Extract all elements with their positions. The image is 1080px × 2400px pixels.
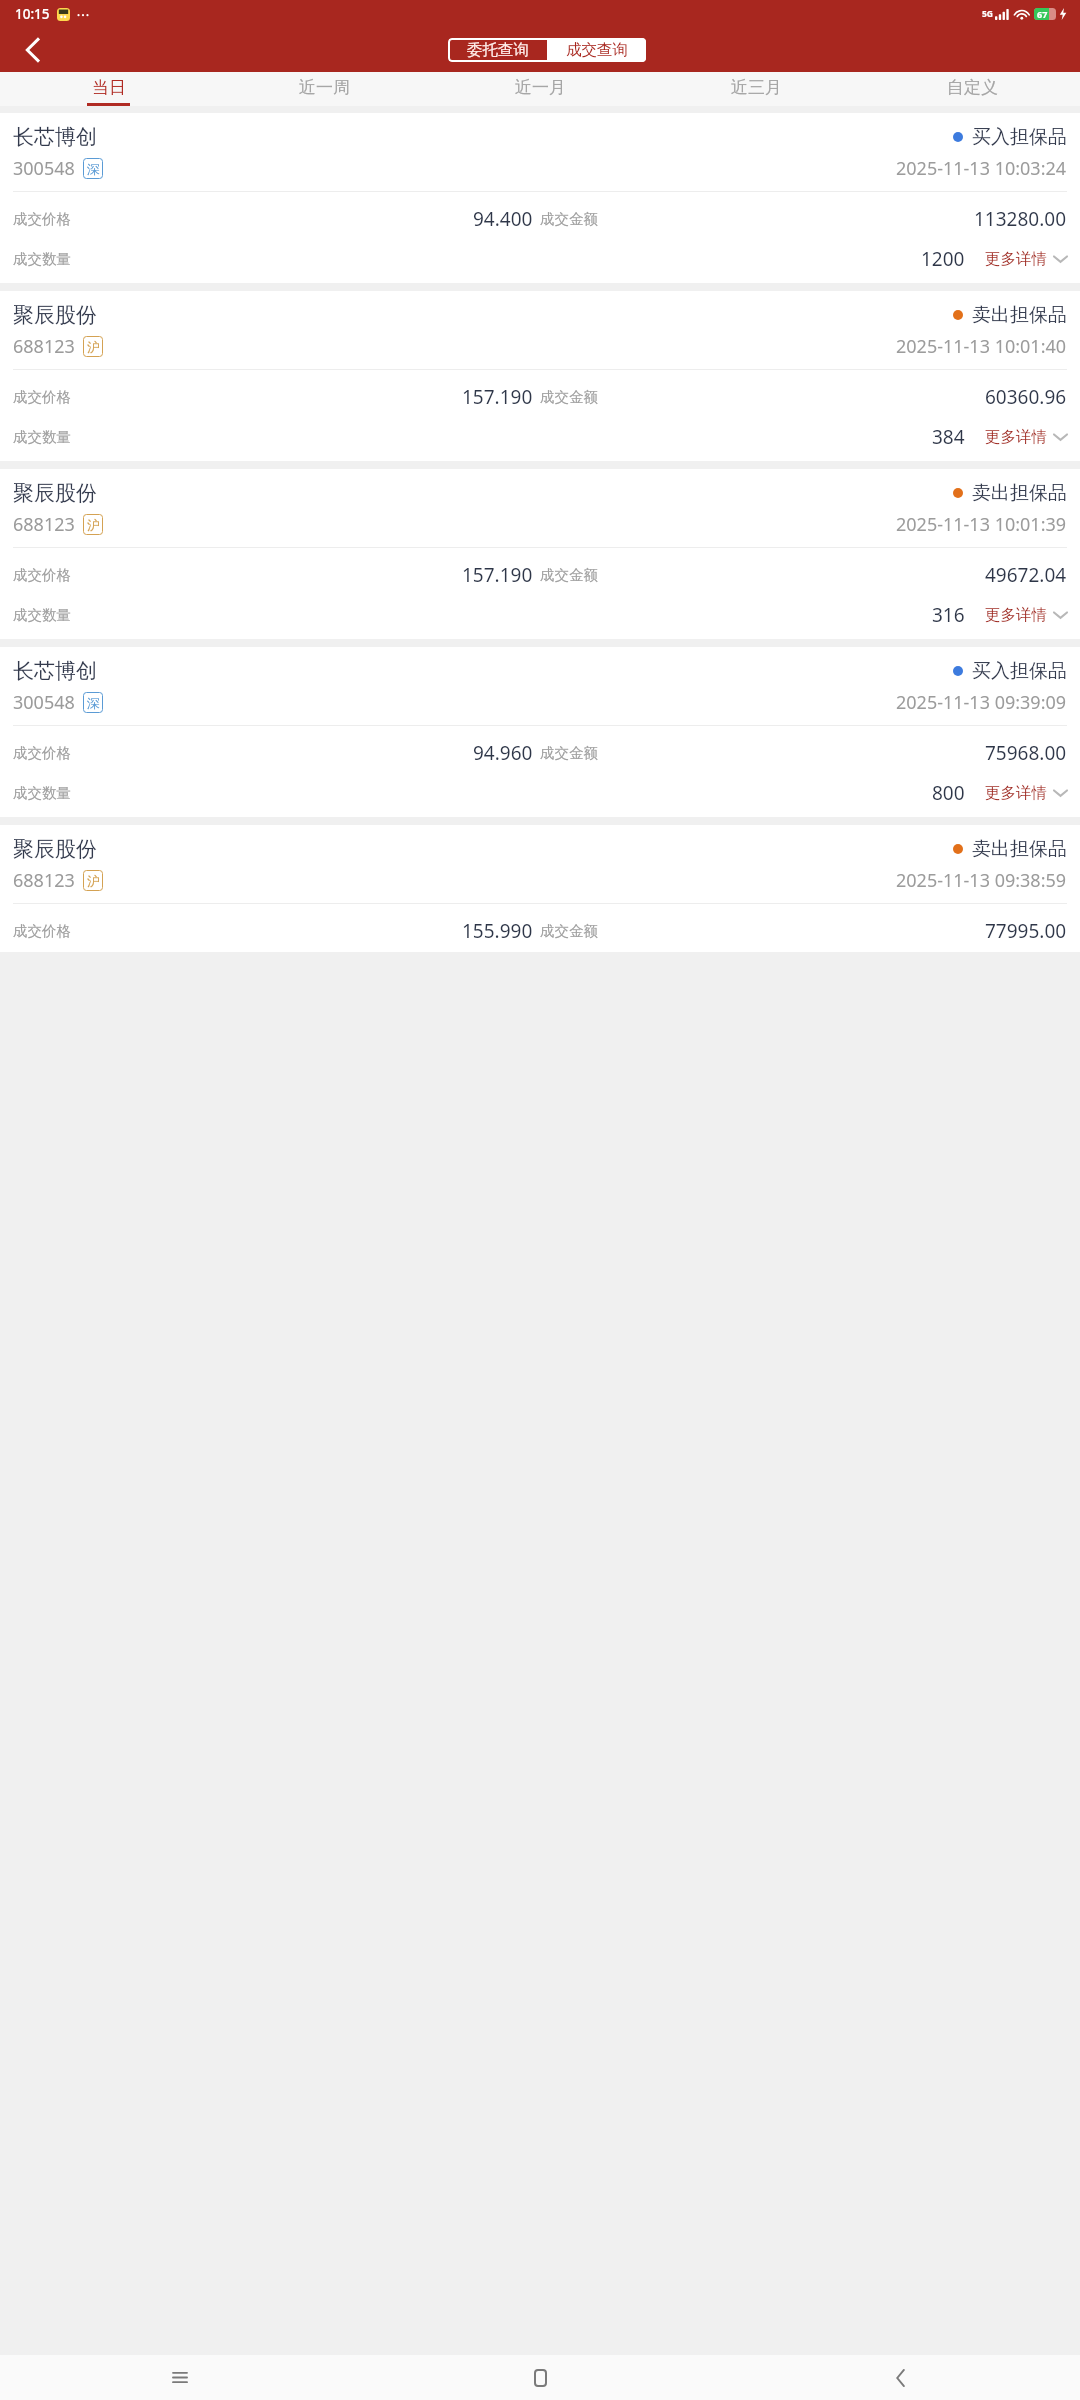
staticText: 买入担保品 [972, 659, 1067, 683]
staticText: 成交金额 [540, 922, 598, 940]
staticText: 卖出担保品 [972, 837, 1067, 861]
staticText: 成交价格 [13, 744, 71, 762]
staticText: 深 [87, 695, 100, 711]
staticText: 聚辰股份 [13, 302, 97, 328]
staticText: 67 [1037, 8, 1048, 20]
staticText: 155.990 [462, 918, 533, 944]
button[interactable]: 长芯博创 [0, 647, 1080, 817]
staticText: 2025-11-13 10:01:40 [896, 334, 1067, 359]
staticText: 买入担保品 [972, 125, 1067, 149]
button[interactable]: 近三月 [648, 72, 864, 106]
staticText: 157.190 [462, 384, 533, 410]
staticText: 沪 [87, 517, 100, 533]
staticText: 当日 [92, 77, 126, 98]
staticText: 157.190 [462, 562, 533, 588]
staticText: 长芯博创 [13, 658, 97, 684]
staticText: 成交数量 [13, 606, 71, 624]
staticText: 成交价格 [13, 922, 71, 940]
staticText: 60360.96 [985, 384, 1067, 410]
staticText: 成交价格 [13, 566, 71, 584]
staticText: 更多详情 [985, 249, 1047, 269]
staticText: 更多详情 [985, 605, 1047, 625]
button[interactable]: Back [720, 2355, 1080, 2400]
staticText: 成交查询 [566, 40, 628, 60]
staticText: 更多详情 [985, 427, 1047, 447]
staticText: 300548 [13, 690, 75, 715]
staticText: 长芯博创 [13, 124, 97, 150]
button[interactable]: 近一周 [216, 72, 432, 106]
staticText: 成交数量 [13, 784, 71, 802]
staticText: 成交数量 [13, 428, 71, 446]
staticText: 688123 [13, 512, 75, 537]
staticText: 800 [932, 780, 965, 806]
staticText: 94.400 [473, 206, 533, 232]
staticText: 更多详情 [985, 783, 1047, 803]
staticText: 近一月 [515, 77, 566, 98]
staticText: 委托查询 [467, 40, 529, 60]
button[interactable]: 聚辰股份 [0, 825, 1080, 952]
staticText: 深 [87, 161, 100, 177]
staticText: 卖出担保品 [972, 481, 1067, 505]
button[interactable]: 近一月 [432, 72, 648, 106]
button[interactable]: 自定义 [864, 72, 1080, 106]
staticText: 成交金额 [540, 744, 598, 762]
button[interactable]: 成交查询 [547, 38, 646, 62]
staticText: 成交金额 [540, 566, 598, 584]
button[interactable]: Back [8, 27, 56, 72]
staticText: 300548 [13, 156, 75, 181]
staticText: 成交数量 [13, 250, 71, 268]
button[interactable]: Recent apps [0, 2355, 360, 2400]
staticText: 成交金额 [540, 388, 598, 406]
staticText: 沪 [87, 873, 100, 889]
staticText: 2025-11-13 10:03:24 [896, 156, 1067, 181]
button[interactable]: 更多详情 [979, 427, 1067, 447]
button[interactable]: 长芯博创 [0, 113, 1080, 283]
button[interactable]: 聚辰股份 [0, 291, 1080, 461]
staticText: 近三月 [731, 77, 782, 98]
staticText: 沪 [87, 339, 100, 355]
staticText: 75968.00 [985, 740, 1067, 766]
staticText: 49672.04 [985, 562, 1067, 588]
staticText: 成交价格 [13, 210, 71, 228]
staticText: 成交价格 [13, 388, 71, 406]
staticText: 688123 [13, 868, 75, 893]
staticText: 2025-11-13 09:39:09 [896, 690, 1067, 715]
staticText: 113280.00 [974, 206, 1067, 232]
staticText: 成交金额 [540, 210, 598, 228]
staticText: 近一周 [299, 77, 350, 98]
button[interactable]: 更多详情 [979, 605, 1067, 625]
staticText: 1200 [921, 246, 965, 272]
staticText: 316 [932, 602, 965, 628]
staticText: 5G [982, 8, 994, 20]
staticText: 384 [932, 424, 965, 450]
staticText: 688123 [13, 334, 75, 359]
staticText: 卖出担保品 [972, 303, 1067, 327]
button[interactable]: 委托查询 [448, 38, 547, 62]
staticText: 聚辰股份 [13, 836, 97, 862]
staticText: 10:15 [15, 5, 50, 23]
staticText: 聚辰股份 [13, 480, 97, 506]
staticText: 2025-11-13 10:01:39 [896, 512, 1067, 537]
staticText: 77995.00 [985, 918, 1067, 944]
staticText: 自定义 [947, 77, 998, 98]
button[interactable]: 更多详情 [979, 249, 1067, 269]
button[interactable]: 更多详情 [979, 783, 1067, 803]
staticText: 94.960 [473, 740, 533, 766]
button[interactable]: 聚辰股份 [0, 469, 1080, 639]
button[interactable]: Home [360, 2355, 720, 2400]
staticText: 2025-11-13 09:38:59 [896, 868, 1067, 893]
button[interactable]: 当日 [0, 72, 216, 106]
